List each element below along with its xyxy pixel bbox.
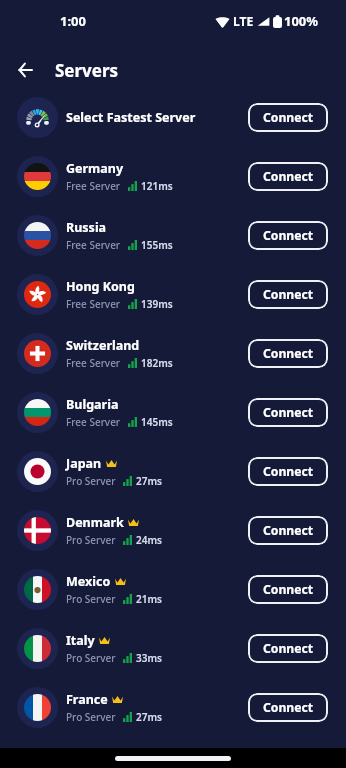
button[interactable]: Switzerland bbox=[0, 324, 346, 383]
staticText: Servers bbox=[55, 59, 119, 82]
staticText: Free Server bbox=[66, 238, 121, 252]
staticText: 121ms bbox=[141, 179, 173, 193]
button[interactable]: Germany bbox=[0, 147, 346, 206]
button[interactable]: Connect bbox=[248, 457, 328, 486]
button[interactable]: Connect bbox=[248, 162, 328, 191]
staticText: Bulgaria bbox=[66, 396, 119, 413]
staticText: Connect bbox=[263, 286, 314, 303]
staticText: France bbox=[66, 691, 108, 708]
button[interactable]: Russia bbox=[0, 206, 346, 265]
staticText: 145ms bbox=[141, 415, 173, 429]
staticText: Connect bbox=[263, 522, 314, 539]
staticText: 155ms bbox=[141, 238, 173, 252]
button[interactable]: Italy bbox=[0, 619, 346, 678]
button[interactable]: Connect bbox=[248, 221, 328, 250]
staticText: 24ms bbox=[136, 533, 162, 547]
staticText: 21ms bbox=[136, 592, 162, 606]
staticText: Connect bbox=[263, 227, 314, 244]
button[interactable]: Connect bbox=[248, 516, 328, 545]
staticText: Connect bbox=[263, 109, 314, 126]
button[interactable]: Select Fastest Server bbox=[0, 88, 346, 147]
staticText: 139ms bbox=[141, 297, 173, 311]
staticText: 33ms bbox=[136, 651, 162, 665]
button[interactable]: Bulgaria bbox=[0, 383, 346, 442]
staticText: Russia bbox=[66, 219, 107, 236]
staticText: Hong Kong bbox=[66, 278, 135, 295]
staticText: Free Server bbox=[66, 179, 121, 193]
staticText: Pro Server bbox=[66, 533, 116, 547]
staticText: Switzerland bbox=[66, 337, 140, 354]
staticText: Denmark bbox=[66, 514, 124, 531]
staticText: 1:00 bbox=[60, 12, 86, 30]
button[interactable]: Hong Kong bbox=[0, 265, 346, 324]
staticText: Pro Server bbox=[66, 474, 116, 488]
button[interactable]: Connect bbox=[248, 280, 328, 309]
staticText: Mexico bbox=[66, 573, 111, 590]
staticText: Connect bbox=[263, 168, 314, 185]
staticText: Connect bbox=[263, 345, 314, 362]
staticText: Germany bbox=[66, 160, 124, 177]
staticText: Select Fastest Server bbox=[66, 109, 196, 126]
button[interactable]: Connect bbox=[248, 398, 328, 427]
staticText: Connect bbox=[263, 581, 314, 598]
button[interactable]: Back bbox=[6, 52, 44, 88]
button[interactable]: Connect bbox=[248, 575, 328, 604]
staticText: LTE bbox=[233, 13, 254, 29]
staticText: Free Server bbox=[66, 297, 121, 311]
button[interactable]: Connect bbox=[248, 693, 328, 722]
staticText: Pro Server bbox=[66, 592, 116, 606]
staticText: 182ms bbox=[141, 356, 173, 370]
button[interactable]: Mexico bbox=[0, 560, 346, 619]
staticText: Free Server bbox=[66, 356, 121, 370]
staticText: Connect bbox=[263, 463, 314, 480]
staticText: Japan bbox=[66, 455, 102, 472]
staticText: Connect bbox=[263, 640, 314, 657]
staticText: 100% bbox=[284, 12, 319, 30]
button[interactable]: Denmark bbox=[0, 501, 346, 560]
staticText: Italy bbox=[66, 632, 95, 649]
staticText: 27ms bbox=[136, 474, 162, 488]
button[interactable]: Japan bbox=[0, 442, 346, 501]
staticText: Pro Server bbox=[66, 710, 116, 724]
button[interactable]: France bbox=[0, 678, 346, 737]
staticText: Connect bbox=[263, 404, 314, 421]
staticText: Connect bbox=[263, 699, 314, 716]
button[interactable]: Connect bbox=[248, 103, 328, 132]
button[interactable]: Connect bbox=[248, 339, 328, 368]
staticText: 27ms bbox=[136, 710, 162, 724]
button[interactable]: Connect bbox=[248, 634, 328, 663]
staticText: Pro Server bbox=[66, 651, 116, 665]
staticText: Free Server bbox=[66, 415, 121, 429]
